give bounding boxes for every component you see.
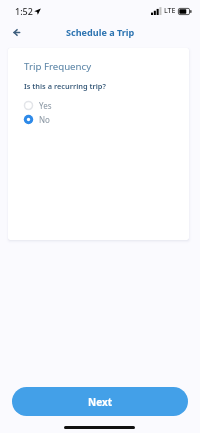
staticText: Is this a recurring trip? [24, 81, 106, 91]
staticText: 1:52 [15, 5, 33, 17]
staticText: Schedule a Trip [66, 26, 135, 38]
button[interactable]: Next [12, 387, 188, 416]
staticText: LTE [164, 6, 176, 16]
button[interactable]: Back [7, 23, 25, 41]
button[interactable]: No [23, 113, 83, 126]
staticText: No [39, 114, 50, 125]
staticText: Yes [39, 100, 52, 111]
button[interactable]: Yes [23, 99, 83, 112]
staticText: Trip Frequency [24, 60, 92, 73]
staticText: Next [88, 395, 113, 409]
